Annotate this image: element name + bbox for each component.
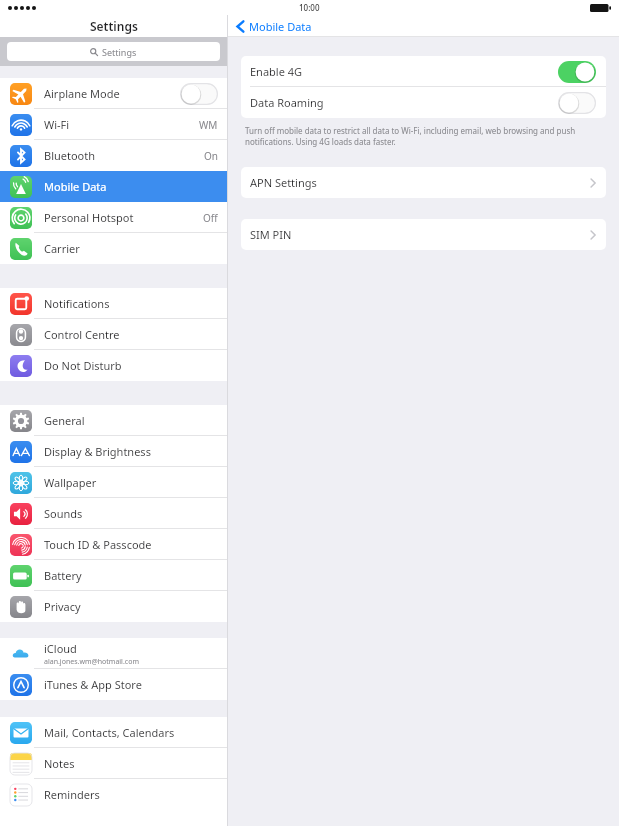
- button[interactable]: APN Settings: [241, 167, 606, 198]
- staticText: Mobile Data: [249, 19, 312, 34]
- staticText: Notes: [44, 756, 75, 771]
- button[interactable]: Battery: [0, 560, 227, 591]
- button[interactable]: Control Centre: [0, 319, 227, 350]
- staticText: WM: [199, 118, 218, 132]
- button[interactable]: Reminders: [0, 779, 227, 810]
- button[interactable]: iTunes & App Store: [0, 669, 227, 700]
- button[interactable]: Notifications: [0, 288, 227, 319]
- staticText: General: [44, 413, 85, 428]
- staticText: 10:00: [299, 2, 320, 13]
- staticText: Bluetooth: [44, 148, 96, 163]
- staticText: Turn off mobile data to restrict all dat…: [245, 125, 602, 147]
- staticText: Display & Brightness: [44, 444, 151, 459]
- button[interactable]: Settings: [7, 42, 220, 61]
- button[interactable]: Off: [558, 92, 596, 114]
- button[interactable]: Privacy: [0, 591, 227, 622]
- staticText: Mobile Data: [44, 179, 107, 194]
- button[interactable]: Carrier: [0, 233, 227, 264]
- staticText: iCloud: [44, 641, 77, 656]
- button[interactable]: General: [0, 405, 227, 436]
- button[interactable]: Bluetooth: [0, 140, 227, 171]
- staticText: Mail, Contacts, Calendars: [44, 725, 175, 740]
- button[interactable]: Touch ID & Passcode: [0, 529, 227, 560]
- staticText: On: [204, 149, 218, 163]
- button[interactable]: Back: [234, 17, 314, 36]
- staticText: Personal Hotspot: [44, 210, 134, 225]
- staticText: Settings: [102, 46, 137, 58]
- button[interactable]: Display & Brightness: [0, 436, 227, 467]
- staticText: Privacy: [44, 599, 81, 614]
- staticText: Touch ID & Passcode: [44, 537, 152, 552]
- button[interactable]: Wallpaper: [0, 467, 227, 498]
- staticText: Control Centre: [44, 327, 120, 342]
- button[interactable]: SIM PIN: [241, 219, 606, 250]
- staticText: Sounds: [44, 506, 83, 521]
- button[interactable]: Enable 4G: [241, 56, 606, 87]
- staticText: Reminders: [44, 787, 100, 802]
- staticText: Battery: [44, 568, 82, 583]
- staticText: Wallpaper: [44, 475, 97, 490]
- staticText: Notifications: [44, 296, 110, 311]
- button[interactable]: Off: [180, 83, 218, 105]
- staticText: Wi-Fi: [44, 117, 70, 132]
- button[interactable]: Data Roaming: [241, 87, 606, 118]
- button[interactable]: Wi-Fi: [0, 109, 227, 140]
- button[interactable]: Notes: [0, 748, 227, 779]
- staticText: Data Roaming: [250, 95, 558, 110]
- button[interactable]: Mail, Contacts, Calendars: [0, 717, 227, 748]
- button[interactable]: Sounds: [0, 498, 227, 529]
- button[interactable]: Personal Hotspot: [0, 202, 227, 233]
- staticText: alan.jones.wm@hotmail.com: [44, 657, 139, 667]
- staticText: APN Settings: [250, 175, 590, 190]
- staticText: Enable 4G: [250, 64, 558, 79]
- button[interactable]: Do Not Disturb: [0, 350, 227, 381]
- staticText: Airplane Mode: [44, 86, 120, 101]
- staticText: Carrier: [44, 241, 80, 256]
- staticText: iTunes & App Store: [44, 677, 142, 692]
- button[interactable]: iCloud: [0, 638, 227, 669]
- button[interactable]: Mobile Data: [0, 171, 227, 202]
- staticText: Settings: [90, 18, 138, 34]
- staticText: Off: [203, 211, 218, 225]
- button[interactable]: On: [558, 61, 596, 83]
- staticText: Do Not Disturb: [44, 358, 122, 373]
- button[interactable]: Airplane Mode: [0, 78, 227, 109]
- staticText: SIM PIN: [250, 227, 590, 242]
